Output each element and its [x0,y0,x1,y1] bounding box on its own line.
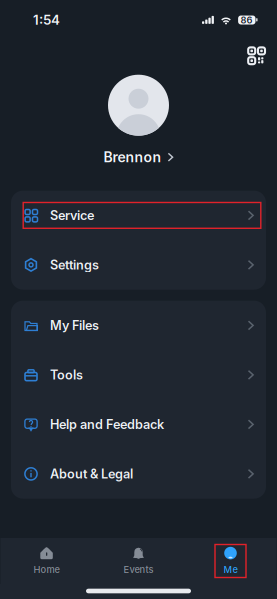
staticText: Tools [50,367,83,382]
staticText: Home [33,564,59,575]
button[interactable]: Scan QR code [238,37,270,69]
button[interactable]: Me [184,542,276,580]
button[interactable]: Tools [11,350,266,400]
staticText: Me [223,564,237,575]
staticText: Brennon [103,149,161,166]
staticText: 1:54 [33,12,60,28]
staticText: Help and Feedback [50,417,164,432]
staticText: Events [123,564,153,575]
staticText: 86 [240,14,252,26]
staticText: Service [50,208,94,223]
staticText: Settings [50,257,99,272]
button[interactable]: My Files [11,301,266,350]
button[interactable]: Home [0,542,92,580]
staticText: About & Legal [50,466,133,481]
button[interactable]: Events [92,542,184,580]
button[interactable]: About & Legal [11,449,266,499]
staticText: My Files [50,318,99,333]
button[interactable]: Service [11,191,266,240]
button[interactable]: Help and Feedback [11,400,266,449]
button[interactable]: Settings [11,240,266,290]
button[interactable]: Brennon [103,136,173,175]
